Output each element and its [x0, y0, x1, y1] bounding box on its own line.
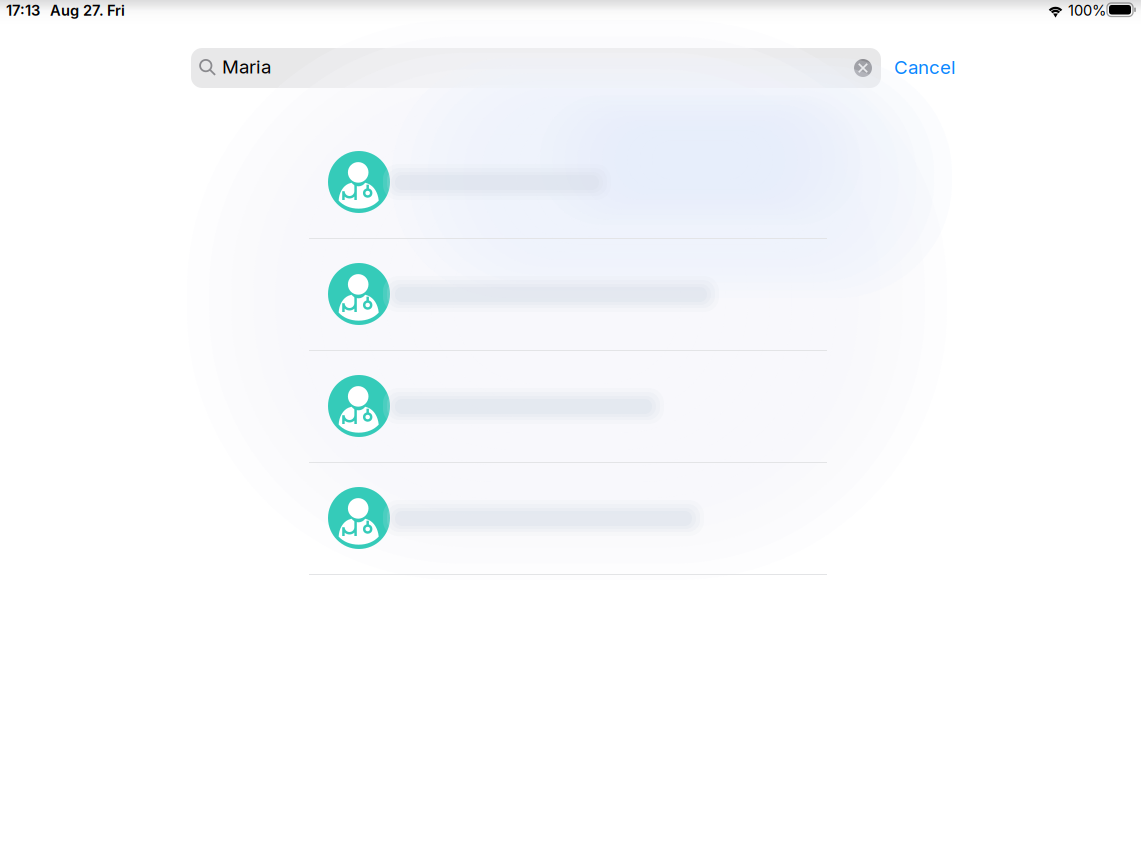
staticText: Aug 27. Fri: [50, 1, 125, 19]
staticText: Cancel: [894, 56, 956, 79]
button[interactable]: [309, 351, 827, 462]
button[interactable]: [309, 239, 827, 350]
button[interactable]: Cancel: [894, 56, 956, 79]
staticText: 100%: [1068, 1, 1106, 19]
button[interactable]: [309, 463, 827, 574]
staticText: 17:13: [6, 1, 40, 19]
staticText: Maria: [222, 55, 271, 78]
button[interactable]: [309, 127, 827, 238]
button[interactable]: Clear search: [854, 59, 872, 77]
